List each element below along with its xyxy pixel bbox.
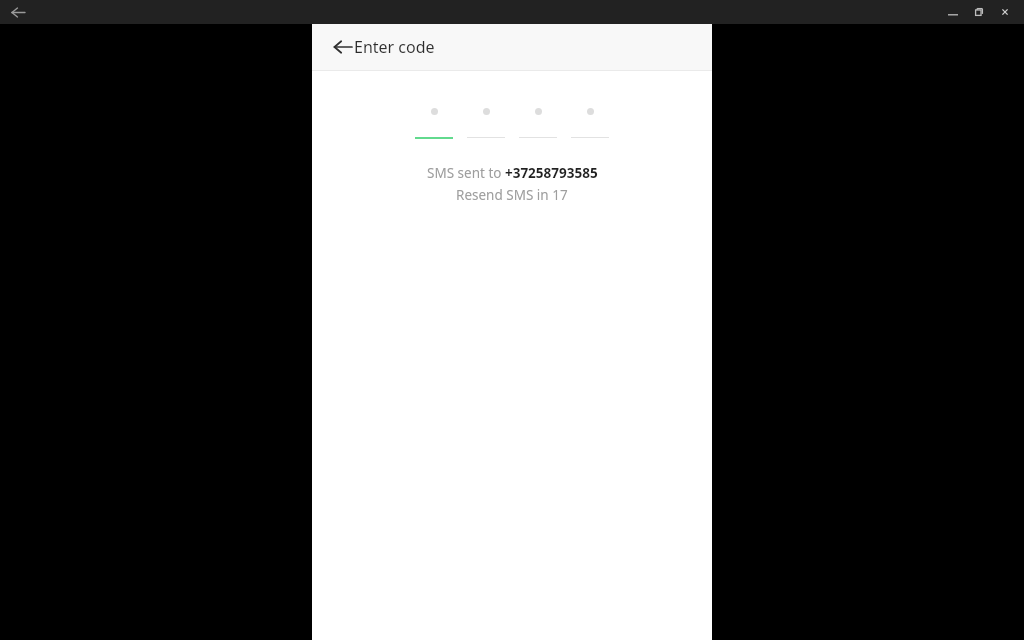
button[interactable]: Minimize <box>940 0 966 24</box>
staticText: SMS sent to +37258793585 <box>427 164 598 182</box>
button[interactable]: Close <box>992 0 1018 24</box>
button[interactable] <box>512 108 564 138</box>
button[interactable]: Resend SMS in 17 <box>456 186 568 204</box>
button[interactable]: Navigate up <box>321 25 365 69</box>
button[interactable] <box>408 108 460 139</box>
button[interactable]: Maximize <box>966 0 992 24</box>
button[interactable] <box>564 108 616 138</box>
staticText: Enter code <box>354 36 435 58</box>
button[interactable]: Back <box>0 0 36 24</box>
staticText: Resend SMS in 17 <box>456 186 568 204</box>
button[interactable] <box>460 108 512 138</box>
